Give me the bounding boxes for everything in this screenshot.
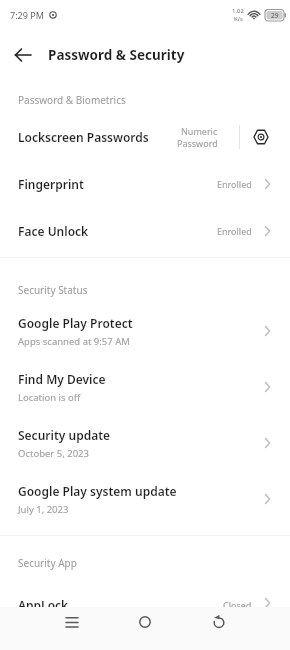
button[interactable]: Google Play system update (0, 471, 290, 527)
staticText: Location is off (18, 391, 81, 404)
staticText: Enrolled (217, 225, 252, 237)
staticText: Security Status (18, 283, 88, 297)
button[interactable]: Find My Device (0, 359, 290, 415)
button[interactable]: Google Play Protect (0, 303, 290, 359)
staticText: 7:29 PM (10, 9, 44, 21)
staticText: Fingerprint (18, 176, 84, 192)
staticText: Lockscreen Passwords (18, 129, 149, 145)
staticText: Face Unlock (18, 223, 89, 239)
staticText: AppLock (18, 597, 69, 611)
button[interactable] (52, 607, 92, 637)
staticText: K/s (234, 15, 243, 23)
staticText: Google Play Protect (18, 315, 133, 331)
staticText: Password (177, 137, 218, 149)
staticText: Security App (18, 556, 77, 570)
staticText: 1.02 (232, 7, 244, 15)
staticText: October 5, 2023 (18, 447, 89, 460)
staticText: Find My Device (18, 371, 106, 387)
button[interactable]: AppLock (0, 570, 290, 611)
staticText: Closed (223, 599, 252, 611)
staticText: Password & Biometrics (18, 93, 126, 107)
button[interactable] (125, 607, 165, 637)
staticText: Security update (18, 427, 111, 443)
button[interactable]: Face Unlock (0, 207, 290, 254)
staticText: Apps scanned at 9:57 AM (18, 335, 130, 348)
staticText: Enrolled (217, 178, 252, 190)
staticText: Numeric (181, 125, 218, 137)
staticText: Password & Security (48, 46, 185, 64)
button[interactable]: Security update (0, 415, 290, 471)
button[interactable]: Lockscreen Passwords (0, 113, 290, 160)
staticText: 29 (271, 11, 279, 20)
button[interactable] (6, 38, 40, 72)
staticText: Google Play system update (18, 483, 177, 499)
button[interactable] (198, 607, 238, 637)
button[interactable]: Fingerprint (0, 160, 290, 207)
staticText: July 1, 2023 (18, 503, 69, 516)
